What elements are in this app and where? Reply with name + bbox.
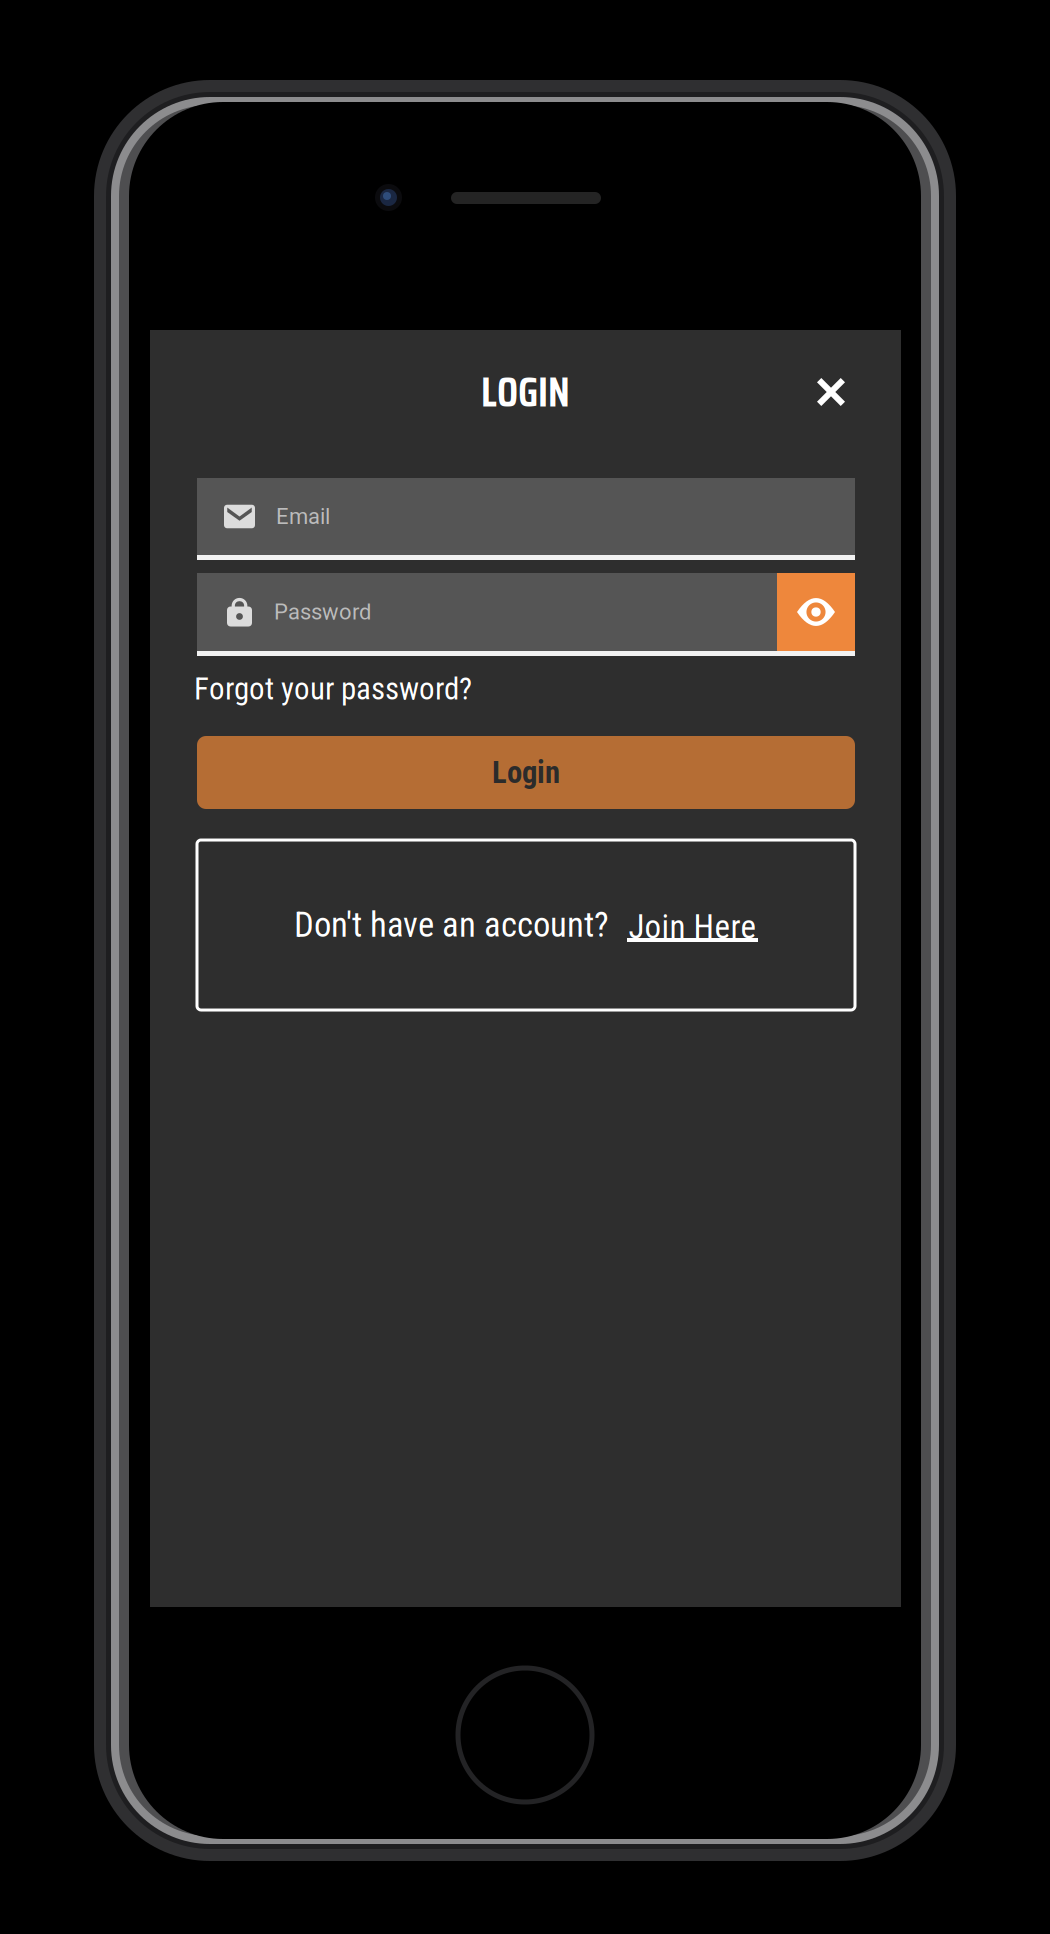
button[interactable]: Close (796, 357, 866, 427)
staticText: Password (274, 599, 371, 625)
staticText: Email (276, 504, 330, 529)
staticText: LOGIN (481, 359, 570, 425)
staticText: Forgot your password? (194, 671, 472, 707)
staticText: Login (492, 754, 560, 790)
button[interactable]: Forgot your password? (194, 667, 852, 711)
button[interactable]: Don't have an account? (197, 840, 855, 1010)
button[interactable]: Login (197, 736, 855, 809)
staticText: Don't have an account? (294, 905, 609, 945)
button[interactable]: Show password (777, 573, 855, 651)
staticText: Join Here (628, 908, 756, 946)
